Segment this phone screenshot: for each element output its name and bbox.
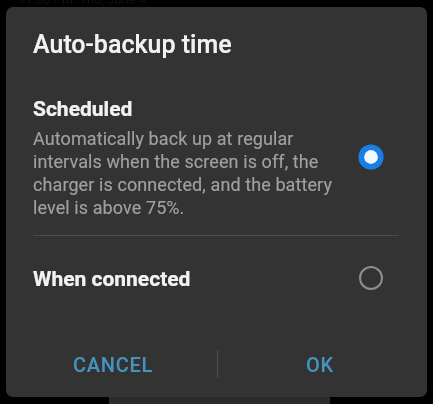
staticText: When connected — [33, 267, 191, 292]
staticText: Auto-backup time — [33, 30, 232, 59]
staticText: 11:08 PM Thu, June 4 — [18, 0, 147, 7]
other: Scheduled, selected — [358, 144, 384, 170]
staticText: Scheduled — [33, 97, 133, 122]
button[interactable]: Scheduled — [6, 88, 427, 228]
button[interactable]: CANCEL — [14, 336, 211, 392]
other: When connected, not selected — [359, 266, 383, 290]
staticText: CANCEL — [73, 353, 153, 376]
staticText: OK — [306, 353, 334, 376]
button[interactable]: When connected — [6, 252, 427, 314]
staticText: Automatically back up at regular interva… — [33, 128, 333, 219]
button[interactable]: OK — [221, 336, 418, 392]
